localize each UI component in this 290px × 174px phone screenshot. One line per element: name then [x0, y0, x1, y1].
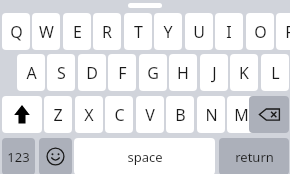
- staticText: S: [57, 62, 66, 84]
- button[interactable]: L: [261, 54, 289, 91]
- button[interactable]: Q: [2, 13, 30, 50]
- staticText: B: [175, 104, 186, 126]
- button[interactable]: I: [215, 13, 243, 50]
- button[interactable]: X: [75, 96, 103, 133]
- staticText: G: [147, 62, 159, 84]
- staticText: H: [177, 62, 189, 84]
- button[interactable]: return: [219, 138, 289, 174]
- button[interactable]: E: [63, 13, 91, 50]
- button[interactable]: space: [74, 138, 215, 174]
- button[interactable]: Shift: [2, 96, 42, 133]
- staticText: O: [254, 21, 267, 43]
- button[interactable]: P: [276, 13, 290, 50]
- staticText: T: [134, 21, 143, 43]
- staticText: J: [212, 62, 217, 84]
- staticText: N: [205, 104, 218, 126]
- staticText: P: [285, 21, 290, 43]
- staticText: D: [86, 62, 98, 84]
- staticText: L: [271, 62, 280, 84]
- button[interactable]: J: [200, 54, 228, 91]
- staticText: C: [114, 104, 125, 126]
- button[interactable]: V: [136, 96, 164, 133]
- button[interactable]: D: [78, 54, 106, 91]
- button[interactable]: C: [105, 96, 133, 133]
- button[interactable]: Backspace: [249, 96, 289, 133]
- staticText: A: [26, 62, 37, 84]
- staticText: K: [239, 62, 249, 84]
- button[interactable]: A: [17, 54, 45, 91]
- button[interactable]: F: [108, 54, 136, 91]
- button[interactable]: O: [246, 13, 274, 50]
- button[interactable]: W: [32, 13, 60, 50]
- staticText: I: [226, 21, 232, 43]
- button[interactable]: N: [197, 96, 225, 133]
- staticText: space: [127, 148, 163, 166]
- staticText: E: [73, 21, 82, 43]
- staticText: M: [234, 104, 249, 126]
- button[interactable]: U: [185, 13, 213, 50]
- button[interactable]: H: [169, 54, 197, 91]
- button[interactable]: S: [47, 54, 75, 91]
- staticText: V: [145, 104, 155, 126]
- staticText: Q: [10, 21, 23, 43]
- button[interactable]: G: [139, 54, 167, 91]
- button[interactable]: 123: [2, 138, 35, 174]
- staticText: X: [84, 104, 94, 126]
- staticText: U: [193, 21, 205, 43]
- staticText: F: [118, 62, 127, 84]
- staticText: Z: [53, 104, 63, 126]
- button[interactable]: Y: [154, 13, 182, 50]
- button[interactable]: M: [227, 96, 255, 133]
- button[interactable]: Z: [44, 96, 72, 133]
- button[interactable]: B: [166, 96, 194, 133]
- staticText: R: [102, 21, 112, 43]
- staticText: Y: [163, 21, 173, 43]
- button[interactable]: K: [230, 54, 258, 91]
- staticText: return: [235, 148, 274, 166]
- button[interactable]: T: [124, 13, 152, 50]
- staticText: 123: [7, 148, 30, 166]
- staticText: W: [39, 21, 54, 43]
- button[interactable]: R: [93, 13, 121, 50]
- button[interactable]: Emoji: [39, 138, 72, 174]
